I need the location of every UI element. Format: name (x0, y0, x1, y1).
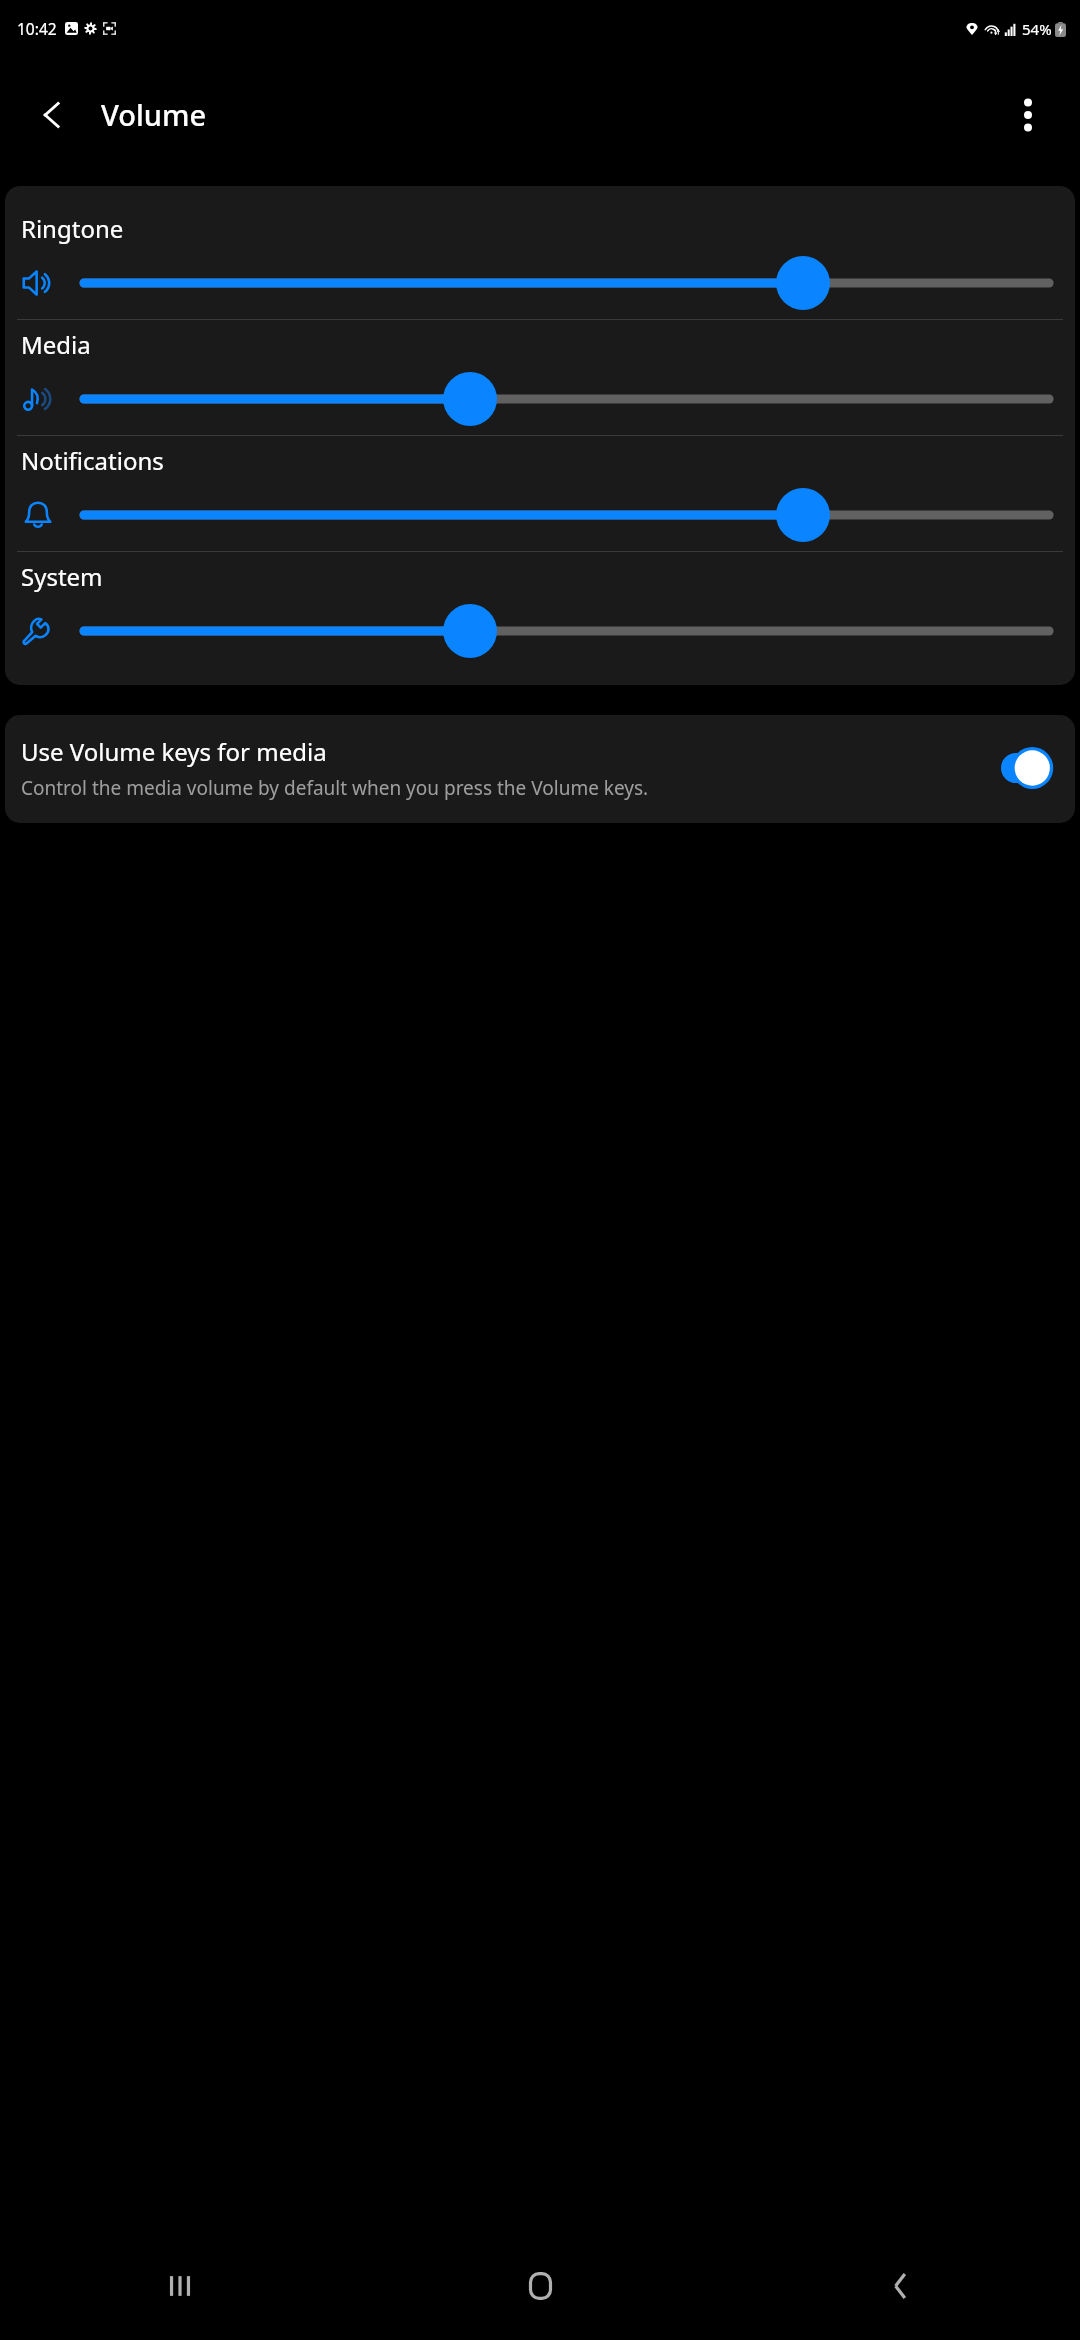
staticText: 54% (1022, 19, 1052, 39)
button[interactable]: Recents (0, 2232, 360, 2340)
staticText: System (21, 560, 103, 593)
button[interactable]: Media (5, 320, 1075, 435)
button[interactable]: Use Volume keys for media toggle (1001, 747, 1059, 789)
button[interactable]: More options (998, 85, 1058, 145)
staticText: Notifications (21, 444, 164, 477)
button[interactable]: Home (360, 2232, 720, 2340)
staticText: Media (21, 328, 91, 361)
staticText: 10:42 (17, 18, 57, 39)
button[interactable]: Notifications (5, 436, 1075, 551)
staticText: Use Volume keys for media (21, 735, 327, 768)
button[interactable] (80, 263, 1059, 303)
button[interactable] (80, 495, 1059, 535)
button[interactable]: System (5, 552, 1075, 667)
button[interactable]: Use Volume keys for media (5, 715, 1075, 823)
button[interactable] (80, 379, 1059, 419)
staticText: Ringtone (21, 212, 124, 245)
button[interactable]: Back (720, 2232, 1080, 2340)
button[interactable]: Back (22, 85, 82, 145)
button[interactable]: Ringtone (5, 204, 1075, 319)
staticText: Control the media volume by default when… (21, 775, 649, 801)
staticText: Volume (101, 95, 207, 134)
button[interactable] (80, 611, 1059, 651)
